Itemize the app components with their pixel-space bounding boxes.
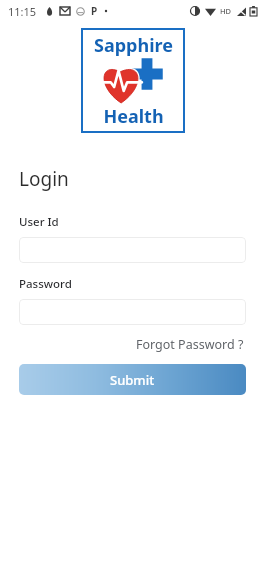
staticText: HD xyxy=(220,6,232,16)
staticText: User Id xyxy=(19,214,59,230)
button[interactable]: Submit xyxy=(19,364,246,395)
button[interactable]: Forgot Password ? xyxy=(134,334,246,355)
staticText: 11:15 xyxy=(8,4,37,19)
staticText: Password xyxy=(19,276,72,292)
button[interactable] xyxy=(19,299,246,325)
button[interactable] xyxy=(19,237,246,263)
staticText: P xyxy=(91,4,98,18)
staticText: Sapphire xyxy=(94,33,173,58)
staticText: Health xyxy=(103,104,164,129)
staticText: Login xyxy=(19,166,69,192)
staticText: Forgot Password ? xyxy=(136,336,244,353)
staticText: Submit xyxy=(110,371,155,389)
